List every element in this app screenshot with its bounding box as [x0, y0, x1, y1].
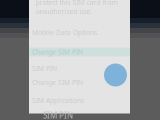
staticText: SIM Applications [32, 96, 84, 105]
staticText: Enter the PIN that is used to protect th… [35, 0, 123, 16]
staticText: SIM PIN [32, 64, 57, 73]
staticText: Change SIM PIN [32, 78, 83, 87]
staticText: Mobile Data Options [32, 28, 97, 37]
staticText: SIM PIN [43, 110, 73, 120]
staticText: Change SIM PIN [32, 48, 83, 56]
